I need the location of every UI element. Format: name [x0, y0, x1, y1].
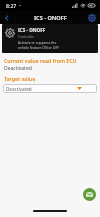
- staticText: vehicle feature ON or OFF: [18, 45, 59, 50]
- staticText: Deactivated: [6, 86, 32, 92]
- button[interactable]: ICS - ONOFF: [2, 24, 98, 53]
- staticText: ICS - ONOFF: [34, 14, 67, 22]
- button[interactable]: Back: [0, 11, 13, 24]
- staticText: 8:27: [6, 2, 17, 9]
- button[interactable]: Settings: [86, 12, 98, 24]
- staticText: ICS - ONOFF: [18, 27, 46, 33]
- button[interactable]: Deactivated: [3, 84, 97, 93]
- staticText: Target value: [4, 75, 36, 82]
- button[interactable]: Send: [83, 188, 96, 201]
- staticText: Current value read from ECU: [4, 57, 77, 64]
- staticText: Activate or suppress the: [18, 40, 57, 45]
- staticText: Controller: [18, 34, 34, 39]
- staticText: Deactivated: [4, 65, 32, 72]
